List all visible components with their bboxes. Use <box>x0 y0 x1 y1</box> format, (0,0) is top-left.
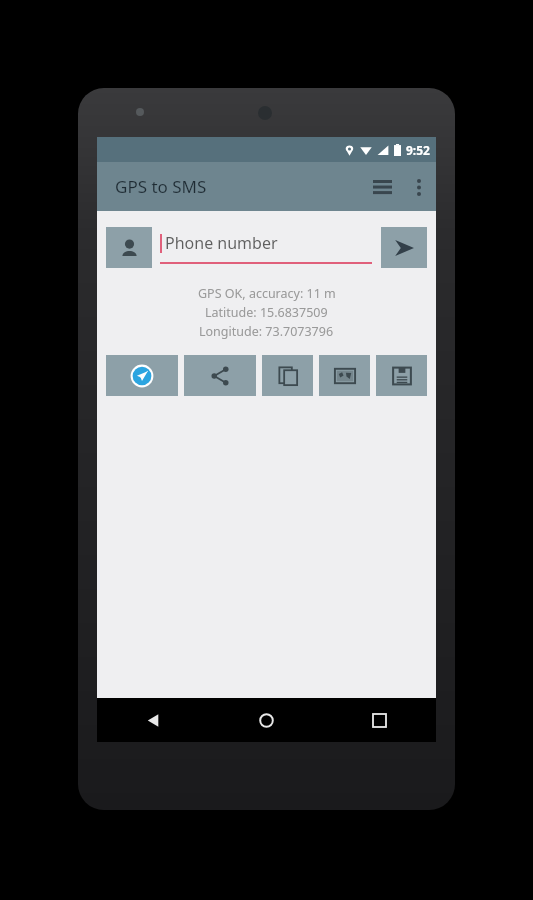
button[interactable]: Send to Telegram <box>106 355 178 396</box>
staticText: 9:52 <box>406 142 430 158</box>
button[interactable]: Open map <box>319 355 370 396</box>
button[interactable]: List <box>362 167 402 207</box>
button[interactable]: Save <box>376 355 427 396</box>
button[interactable]: Copy <box>262 355 313 396</box>
button[interactable]: Share <box>184 355 256 396</box>
button[interactable]: Home <box>210 698 323 742</box>
staticText: GPS to SMS <box>115 175 207 198</box>
button[interactable]: More options <box>402 170 436 204</box>
staticText: Latitude: 15.6837509 <box>205 304 328 321</box>
button[interactable]: Phone number <box>160 232 372 264</box>
button[interactable]: Back <box>97 698 210 742</box>
button[interactable]: Recent apps <box>323 698 436 742</box>
staticText: Longitude: 73.7073796 <box>199 323 334 340</box>
staticText: Phone number <box>165 232 278 254</box>
staticText: GPS OK, accuracy: 11 m <box>198 285 336 302</box>
button[interactable]: Pick contact <box>106 227 152 268</box>
button[interactable]: Send SMS <box>381 227 427 268</box>
